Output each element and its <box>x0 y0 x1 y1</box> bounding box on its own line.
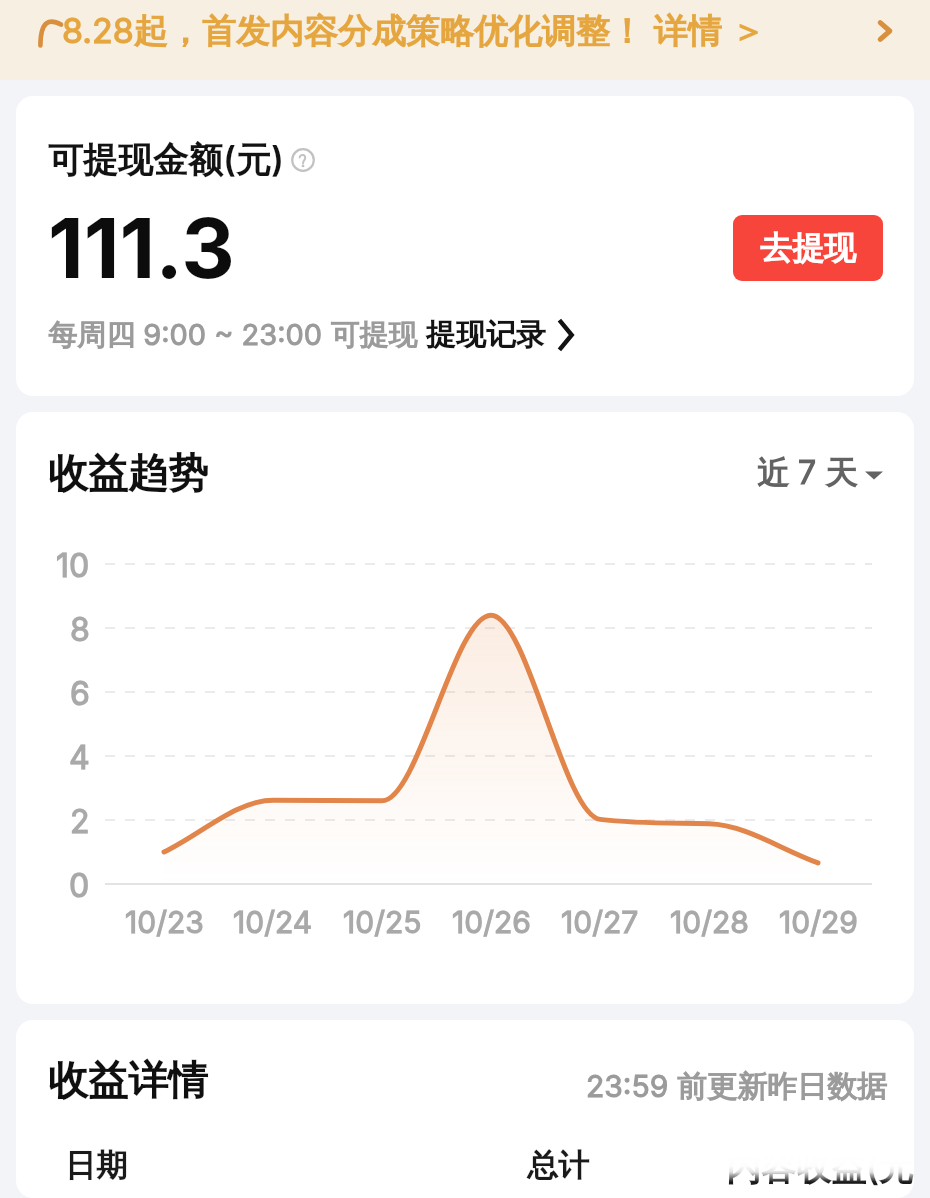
button[interactable]: 8.28起，首发内容分成策略优化调整！ 详情 ＞ <box>0 0 930 80</box>
staticText: 10/24 <box>233 904 313 940</box>
staticText: 10/26 <box>452 904 531 940</box>
staticText: 10/27 <box>561 904 639 940</box>
staticText: 10 <box>56 546 90 585</box>
button[interactable]: 近 7 天 <box>757 453 883 494</box>
staticText: 10/29 <box>779 904 858 940</box>
staticText: 111.3 <box>48 198 235 298</box>
staticText: 6 <box>70 674 90 713</box>
staticText: 总计 <box>527 1146 589 1185</box>
staticText: 10/25 <box>343 904 422 940</box>
staticText: 8.28起，首发内容分成策略优化调整！ 详情 ＞ <box>62 10 765 53</box>
staticText: 2 <box>70 802 90 841</box>
staticText: 内容收益(元) <box>726 1146 914 1190</box>
staticText: 收益趋势 <box>48 448 208 498</box>
staticText: 10/28 <box>670 904 749 940</box>
button[interactable]: 去提现 <box>733 215 883 281</box>
staticText: 10/23 <box>125 904 204 940</box>
staticText: 每周四 9:00 ~ 23:00 可提现 <box>48 317 418 354</box>
staticText: 0 <box>69 866 90 905</box>
staticText: 23:59 前更新昨日数据 <box>586 1068 887 1106</box>
staticText: 提现记录 <box>426 316 546 354</box>
other: More <box>870 16 900 46</box>
staticText: 收益详情 <box>48 1055 208 1105</box>
staticText: 8 <box>70 610 90 649</box>
staticText: 4 <box>69 738 90 777</box>
staticText: 日期 <box>65 1146 127 1185</box>
staticText: 可提现金额(元) <box>48 138 285 182</box>
button[interactable]: 提现记录 <box>426 316 577 354</box>
staticText: 去提现 <box>760 228 856 268</box>
staticText: 近 7 天 <box>757 453 858 494</box>
other: Help <box>291 148 315 172</box>
